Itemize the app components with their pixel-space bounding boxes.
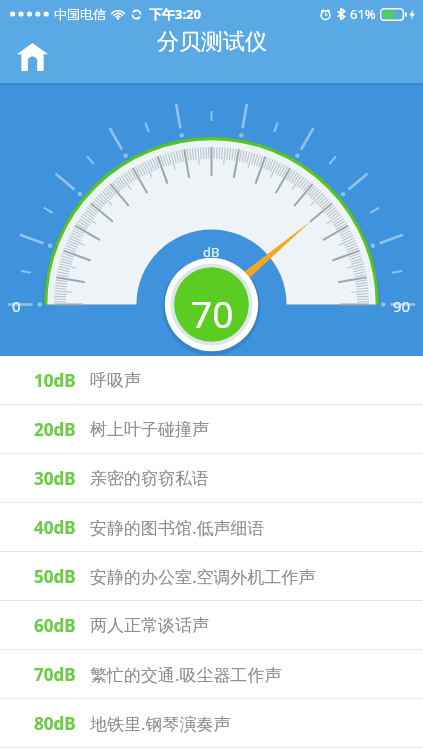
staticText: 树上叶子碰撞声 <box>90 419 209 440</box>
button[interactable]: 10dB <box>0 356 423 404</box>
staticText: 中国电信 <box>54 6 106 22</box>
staticText: 安静的图书馆.低声细语 <box>90 516 265 539</box>
staticText: dB <box>203 243 220 261</box>
staticText: 10dB <box>34 369 76 392</box>
staticText: 90 <box>393 296 411 316</box>
staticText: 分贝测试仪 <box>157 28 267 56</box>
button[interactable]: 70dB <box>0 650 423 698</box>
staticText: 0 <box>12 296 21 316</box>
button[interactable]: 20dB <box>0 405 423 453</box>
button[interactable]: 80dB <box>0 699 423 747</box>
staticText: 20dB <box>34 418 76 441</box>
button[interactable]: Home <box>8 33 56 81</box>
staticText: 安静的办公室.空调外机工作声 <box>90 565 316 588</box>
staticText: 下午3:20 <box>149 5 201 23</box>
staticText: 两人正常谈话声 <box>90 615 209 636</box>
button[interactable]: 60dB <box>0 601 423 649</box>
staticText: 繁忙的交通.吸尘器工作声 <box>90 663 282 686</box>
staticText: 61% <box>350 5 376 23</box>
staticText: 地铁里.钢琴演奏声 <box>90 712 231 735</box>
staticText: 亲密的窃窃私语 <box>90 468 209 489</box>
staticText: 70 <box>191 288 234 338</box>
staticText: 80dB <box>34 712 76 735</box>
button[interactable]: 30dB <box>0 454 423 502</box>
button[interactable]: 40dB <box>0 503 423 551</box>
staticText: 50dB <box>34 565 76 588</box>
staticText: 70dB <box>34 663 76 686</box>
staticText: 40dB <box>34 516 76 539</box>
staticText: 呼吸声 <box>90 370 141 391</box>
staticText: 30dB <box>34 467 76 490</box>
staticText: 60dB <box>34 614 76 637</box>
button[interactable]: 50dB <box>0 552 423 600</box>
